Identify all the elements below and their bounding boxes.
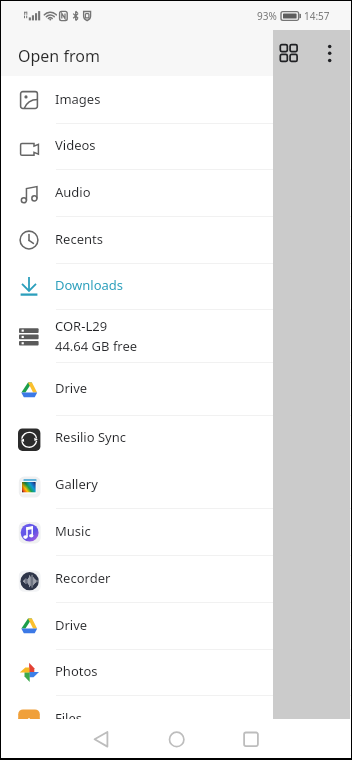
staticText: Gallery [55, 475, 98, 493]
staticText: 44.64 GB free [55, 337, 138, 355]
button[interactable]: Back [79, 719, 125, 758]
staticText: COR-L29 [55, 317, 108, 335]
button[interactable]: Videos [1, 124, 351, 170]
staticText: 93% [257, 9, 277, 23]
staticText: Open from [18, 45, 100, 67]
button[interactable]: Images [1, 77, 351, 124]
button[interactable]: Drive [1, 363, 351, 416]
button[interactable]: Recents [228, 719, 274, 758]
button[interactable]: Recents [1, 217, 351, 264]
staticText: Music [55, 522, 91, 540]
staticText: 14:57 [304, 9, 330, 23]
staticText: Downloads [55, 276, 124, 294]
button[interactable]: Recorder [1, 556, 351, 603]
button[interactable]: COR-L29 [1, 310, 351, 363]
button[interactable]: Drive [1, 603, 351, 650]
button[interactable]: Audio [1, 170, 351, 217]
staticText: Files [55, 709, 83, 719]
staticText: Audio [55, 183, 91, 201]
button[interactable]: Downloads [1, 263, 351, 310]
staticText: Drive [55, 379, 88, 397]
staticText: Videos [55, 136, 96, 154]
staticText: Photos [55, 662, 98, 680]
staticText: Images [55, 90, 101, 108]
button[interactable]: Grid view [276, 41, 302, 66]
staticText: Recorder [55, 569, 111, 587]
button[interactable]: Files [1, 696, 351, 719]
button[interactable]: Home [154, 719, 200, 758]
button[interactable]: Music [1, 509, 351, 556]
staticText: Recents [55, 230, 103, 248]
staticText: Drive [55, 616, 88, 634]
button[interactable]: Photos [1, 649, 351, 696]
button[interactable]: More options [321, 41, 339, 66]
button[interactable]: Resilio Sync [1, 416, 351, 462]
staticText: Resilio Sync [55, 428, 126, 446]
button[interactable]: Gallery [1, 463, 351, 509]
